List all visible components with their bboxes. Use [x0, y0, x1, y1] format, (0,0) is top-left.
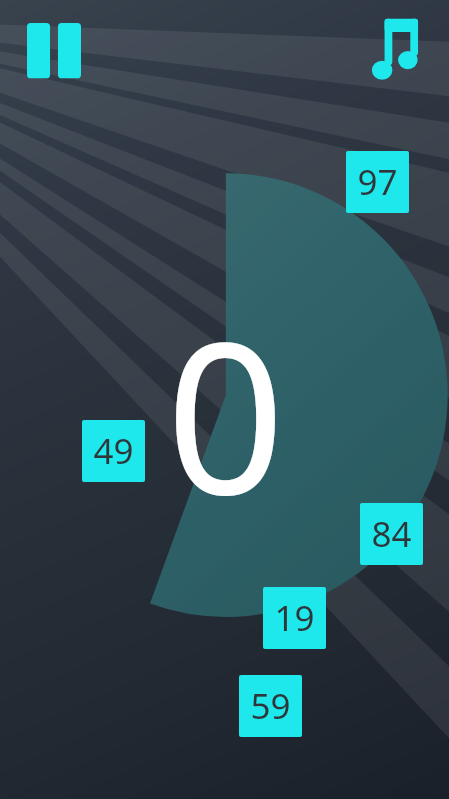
staticText: 97 — [357, 158, 398, 206]
staticText: 49 — [93, 427, 134, 475]
button[interactable]: 59 — [239, 675, 302, 737]
staticText: 84 — [371, 510, 412, 558]
staticText: 0 — [166, 272, 285, 520]
staticText: 19 — [274, 594, 315, 642]
button[interactable]: 84 — [360, 503, 423, 565]
button[interactable]: 97 — [346, 151, 409, 213]
button[interactable]: 49 — [82, 420, 145, 482]
staticText: 59 — [250, 682, 291, 730]
button[interactable]: Music — [370, 16, 432, 86]
button[interactable]: 19 — [263, 587, 326, 649]
button[interactable]: Pause — [18, 13, 90, 89]
